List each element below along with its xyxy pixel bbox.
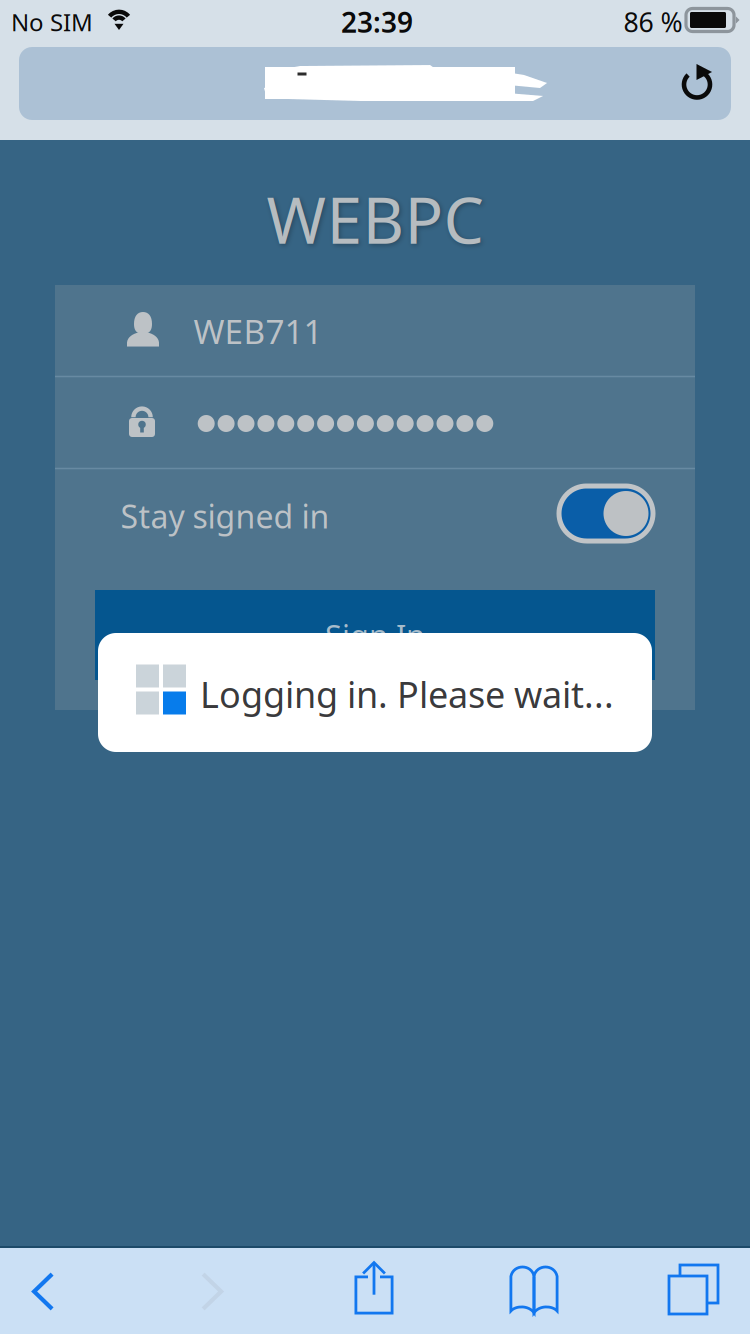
button[interactable]: Reload xyxy=(661,47,733,120)
button[interactable]: Sign In xyxy=(95,590,655,680)
button[interactable]: Tabs xyxy=(618,1246,750,1332)
staticText: Logging in. Please wait... xyxy=(200,670,614,718)
button[interactable]: Back xyxy=(0,1248,118,1334)
button[interactable]: Share xyxy=(299,1244,449,1330)
button[interactable]: Bookmarks xyxy=(459,1247,609,1333)
staticText: WEBPC xyxy=(266,176,483,261)
staticText: 23:39 xyxy=(341,3,413,41)
staticText: Stay signed in xyxy=(120,495,329,537)
staticText: WEB711 xyxy=(193,309,322,353)
button[interactable]: Stay signed in xyxy=(556,483,655,543)
staticText: 86 % xyxy=(623,4,682,40)
staticText: Sign In xyxy=(325,615,425,655)
staticText: No SIM xyxy=(11,6,93,38)
